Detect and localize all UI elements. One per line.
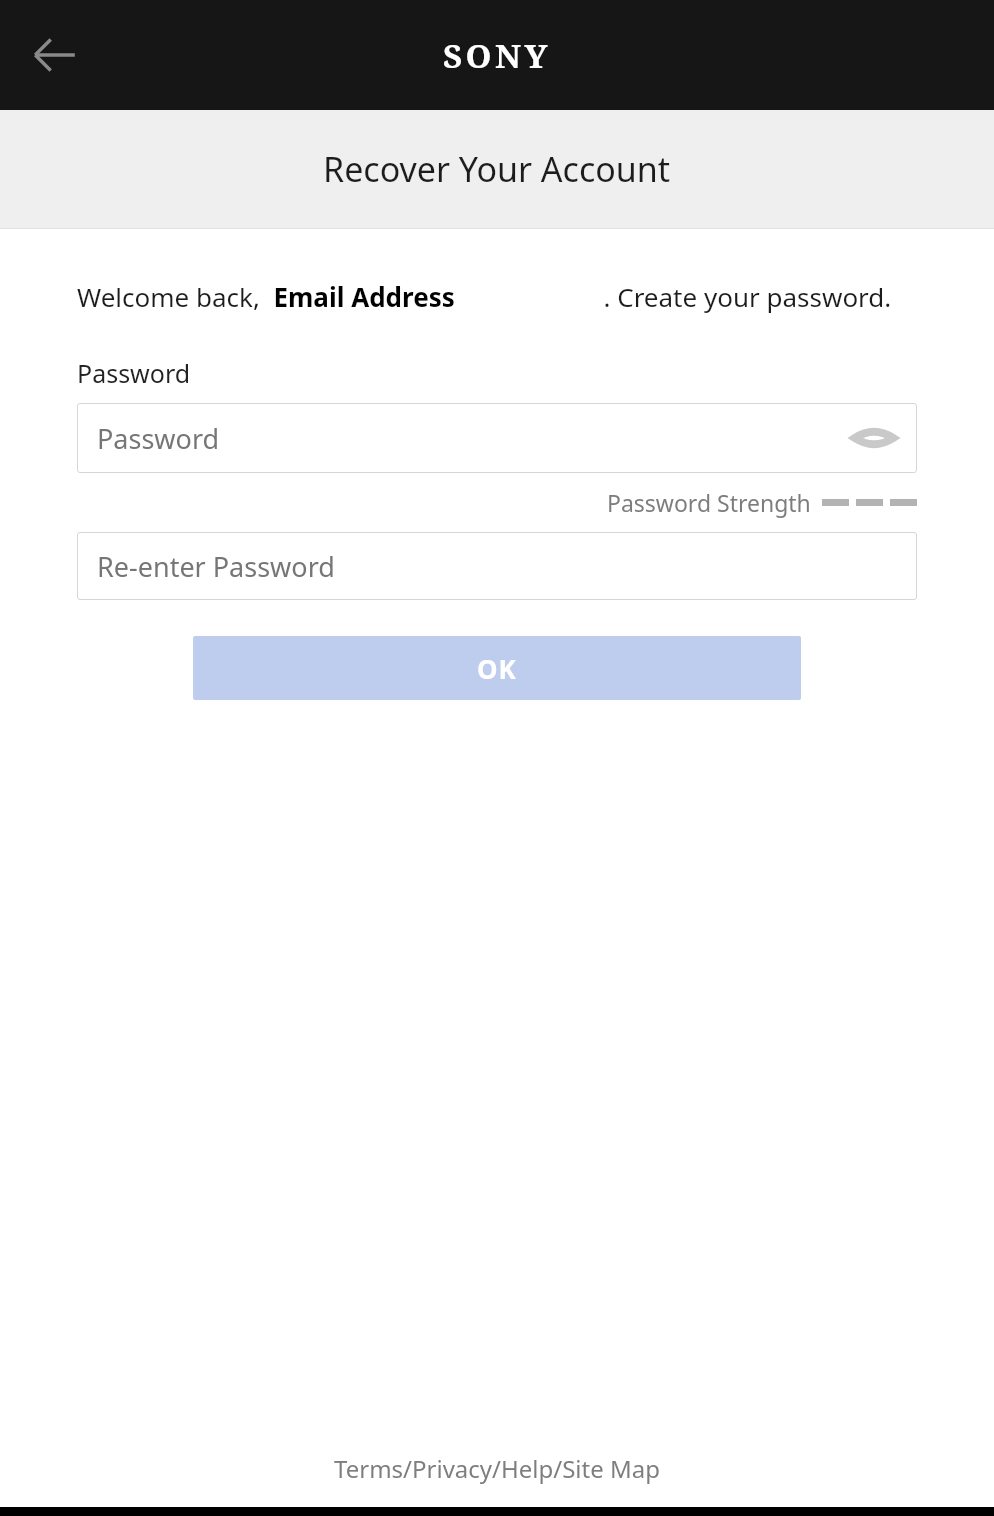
staticText: Terms/Privacy/Help/Site Map: [334, 1452, 660, 1485]
button[interactable]: Password: [77, 403, 917, 473]
button[interactable]: Show password: [851, 415, 897, 461]
staticText: Password Strength: [607, 487, 811, 518]
staticText: SONY: [443, 33, 551, 78]
button[interactable]: Terms/Privacy/Help/Site Map: [334, 1452, 660, 1485]
button[interactable]: Back: [22, 22, 88, 88]
staticText: Re-enter Password: [97, 548, 335, 585]
staticText: OK: [477, 651, 517, 686]
staticText: Welcome back, Email Address . Create you…: [77, 279, 892, 314]
button[interactable]: Re-enter Password: [77, 532, 917, 600]
staticText: Password: [77, 356, 191, 390]
staticText: Recover Your Account: [323, 146, 671, 192]
staticText: Password: [97, 420, 220, 457]
button[interactable]: OK: [193, 636, 801, 700]
